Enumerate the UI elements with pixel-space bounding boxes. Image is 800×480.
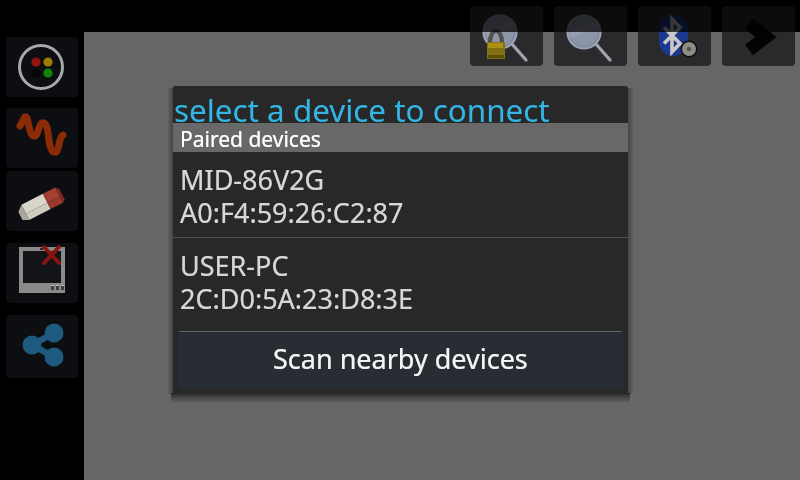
staticText: Paired devices <box>180 125 321 154</box>
button[interactable]: Scan nearby devices <box>178 331 623 389</box>
button[interactable]: Eraser <box>6 171 78 231</box>
button[interactable]: Search <box>554 6 627 66</box>
button[interactable]: Next <box>722 6 795 66</box>
button[interactable]: USER-PC <box>173 238 628 322</box>
button[interactable]: Bluetooth <box>638 6 711 66</box>
button[interactable]: Color palette <box>6 37 78 97</box>
button[interactable]: Share <box>6 315 78 378</box>
staticText: Scan nearby devices <box>273 340 528 377</box>
staticText: A0:F4:59:26:C2:87 <box>180 194 404 231</box>
staticText: select a device to connect <box>174 88 550 125</box>
button[interactable]: Clear canvas <box>6 243 78 303</box>
button[interactable]: MID-86V2G <box>173 152 628 237</box>
button[interactable]: Brush <box>6 108 78 168</box>
staticText: MID-86V2G <box>180 161 325 198</box>
staticText: USER-PC <box>180 247 289 284</box>
staticText: 2C:D0:5A:23:D8:3E <box>180 280 414 317</box>
button[interactable]: Secure search <box>470 6 543 66</box>
